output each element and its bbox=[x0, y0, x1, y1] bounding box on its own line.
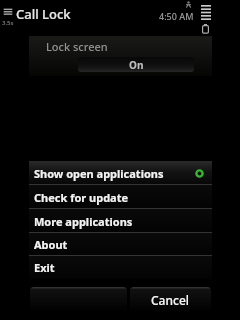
button[interactable]: Options menu bbox=[2, 6, 14, 18]
button[interactable]: On bbox=[78, 57, 194, 72]
staticText: Lock screen bbox=[46, 39, 108, 54]
button[interactable]: More applications bbox=[29, 209, 212, 233]
staticText: Check for update bbox=[34, 190, 129, 205]
staticText: On bbox=[129, 58, 144, 72]
button[interactable]: About bbox=[29, 233, 212, 256]
button[interactable]: Show open applications bbox=[29, 161, 212, 185]
button[interactable]: Exit bbox=[29, 256, 212, 279]
button[interactable]: Options bbox=[30, 287, 127, 312]
staticText: Call Lock bbox=[16, 5, 71, 23]
staticText: 3.5s bbox=[2, 19, 14, 27]
button[interactable]: Check for update bbox=[29, 185, 212, 209]
staticText: More applications bbox=[34, 214, 133, 229]
staticText: About bbox=[34, 237, 68, 252]
staticText: 4:50 AM bbox=[159, 10, 194, 22]
staticText: Show open applications bbox=[34, 166, 164, 181]
staticText: Exit bbox=[34, 260, 55, 275]
button[interactable]: Lock screen bbox=[29, 36, 212, 76]
button[interactable]: Cancel bbox=[130, 287, 211, 312]
staticText: Cancel bbox=[151, 292, 190, 308]
